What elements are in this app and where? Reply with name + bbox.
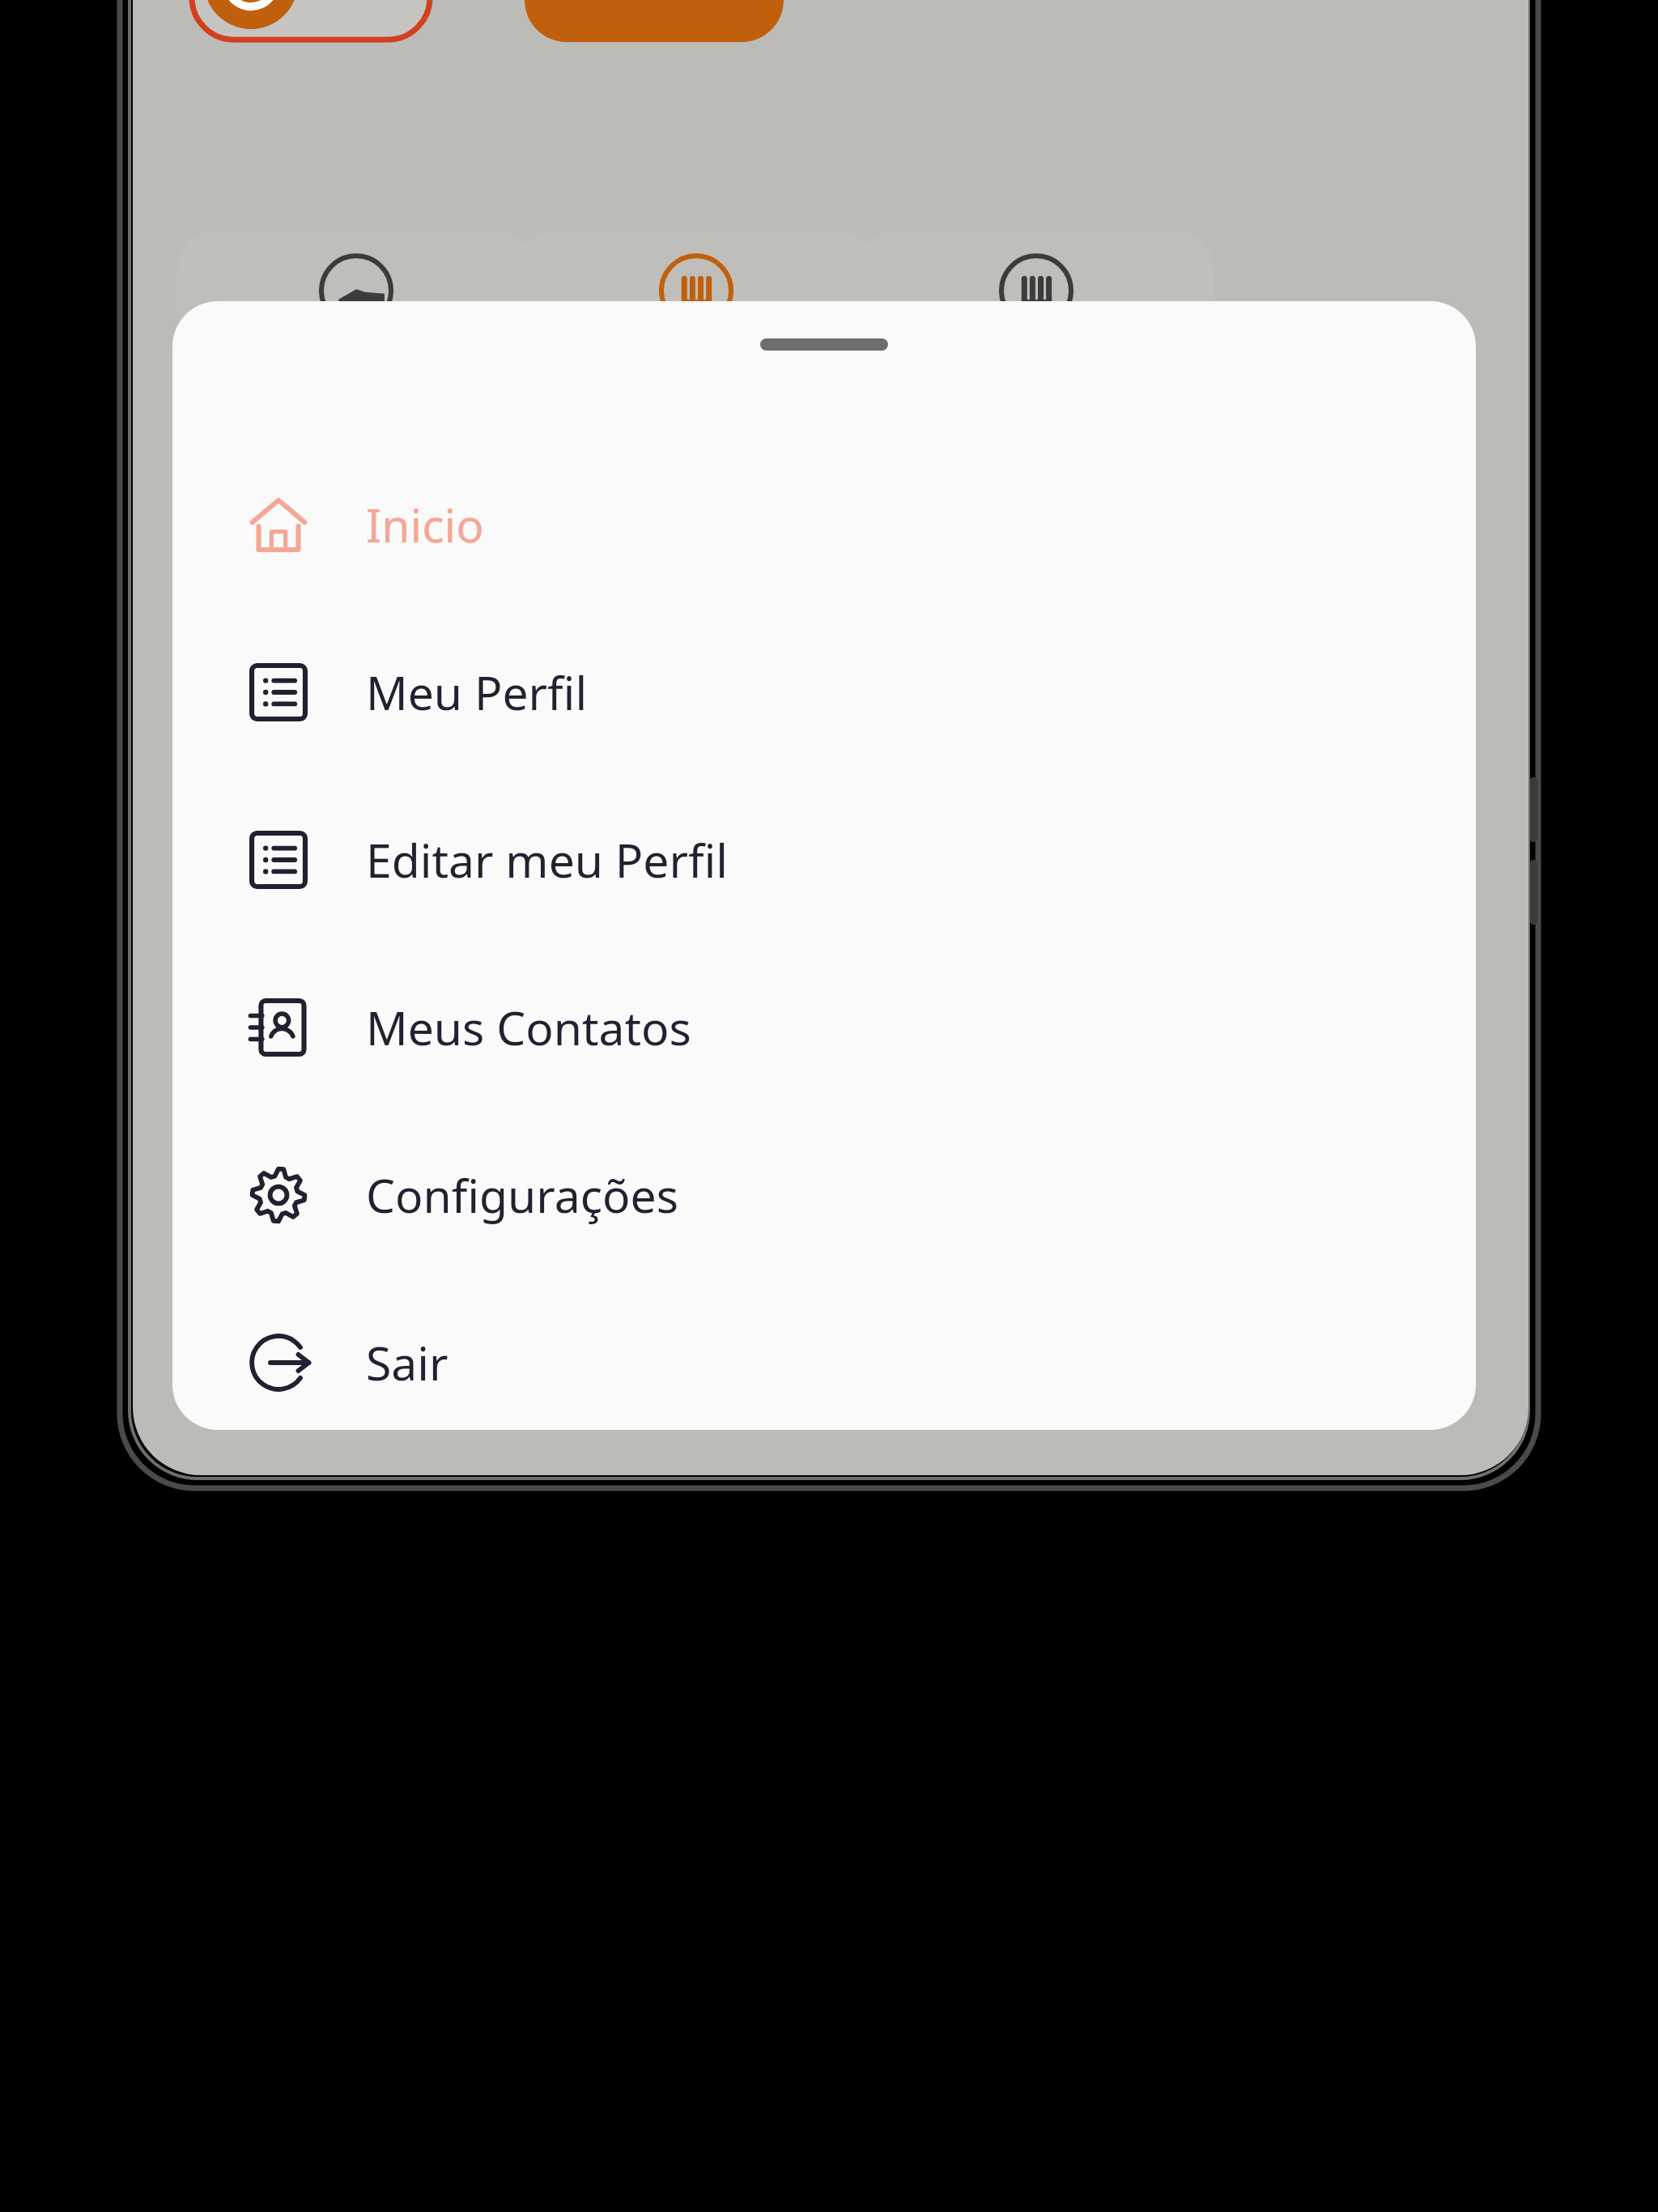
button[interactable]: Editar meu Perfil bbox=[172, 776, 1476, 943]
button[interactable]: Ver Todos bbox=[525, 0, 784, 42]
staticText: Meus Contatos bbox=[366, 996, 691, 1059]
staticText: Sincronizar bbox=[308, 0, 494, 3]
button[interactable]: Configurações bbox=[172, 1111, 1476, 1278]
staticText: Meu Perfil bbox=[366, 661, 588, 724]
button[interactable] bbox=[517, 231, 874, 498]
staticText: Sair bbox=[366, 1331, 449, 1394]
staticText: Configurações bbox=[366, 1163, 679, 1227]
button[interactable] bbox=[177, 231, 534, 498]
button[interactable]: Meu Perfil bbox=[172, 608, 1476, 776]
button[interactable]: Inicio bbox=[172, 440, 1476, 608]
staticText: Inicio bbox=[366, 493, 484, 556]
staticText: Editar meu Perfil bbox=[366, 828, 729, 891]
button[interactable]: Sair bbox=[172, 1278, 1476, 1430]
button[interactable] bbox=[189, 0, 432, 42]
button[interactable]: Meus Contatos bbox=[172, 943, 1476, 1111]
button[interactable] bbox=[857, 231, 1214, 498]
